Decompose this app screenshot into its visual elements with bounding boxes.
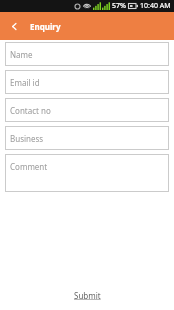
button[interactable]: Business	[5, 126, 169, 150]
staticText: Enquiry	[30, 21, 61, 32]
staticText: Submit	[74, 290, 101, 301]
button[interactable]: Email id	[5, 70, 169, 94]
button[interactable]: Comment	[5, 154, 169, 192]
staticText: Comment	[10, 161, 48, 172]
button[interactable]: Back	[5, 17, 23, 35]
button[interactable]: Name	[5, 42, 169, 66]
button[interactable]: Submit	[64, 287, 111, 304]
staticText: Business	[10, 133, 44, 144]
button[interactable]: Contact no	[5, 98, 169, 122]
staticText: Name	[10, 49, 33, 60]
staticText: Contact no	[10, 105, 51, 116]
staticText: Email id	[10, 77, 40, 88]
staticText: 57%	[112, 1, 126, 11]
staticText: 10:40 AM	[140, 1, 171, 11]
